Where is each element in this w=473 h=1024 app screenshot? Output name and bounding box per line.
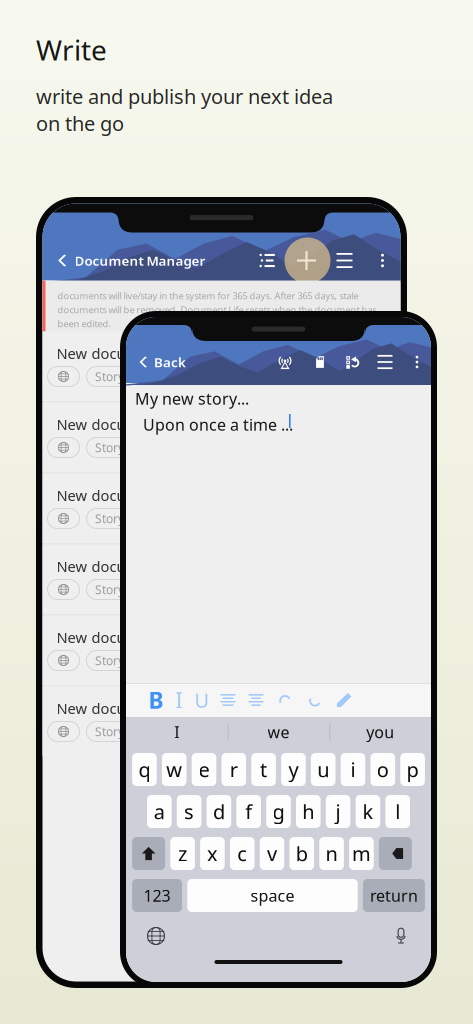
button[interactable]: Switch keyboard [142, 922, 170, 950]
button[interactable]: Story [86, 721, 132, 741]
staticText: New document [56, 556, 161, 576]
button[interactable]: More [371, 247, 393, 273]
button[interactable]: New document [42, 544, 400, 614]
button[interactable]: p [400, 753, 425, 786]
staticText: j [336, 798, 341, 825]
button[interactable]: u [311, 753, 335, 786]
button[interactable]: x [200, 837, 225, 870]
staticText: m [352, 840, 371, 867]
button[interactable]: d [207, 795, 231, 828]
button[interactable] [47, 366, 79, 386]
button[interactable]: Restore [342, 350, 364, 374]
button[interactable] [47, 579, 79, 599]
button[interactable]: Story [86, 437, 132, 457]
staticText: space [250, 885, 294, 906]
button[interactable]: Back [138, 350, 186, 374]
button[interactable]: b [289, 837, 314, 870]
button[interactable]: return [363, 879, 425, 912]
button[interactable]: Clear formatting [330, 683, 358, 717]
staticText: x [207, 840, 218, 867]
staticText: s [184, 798, 194, 825]
button[interactable]: y [281, 753, 306, 786]
staticText: 123 [144, 885, 171, 906]
button[interactable]: space [187, 879, 358, 912]
button[interactable]: Sort [254, 247, 280, 273]
button[interactable] [47, 508, 79, 528]
button[interactable]: New document [42, 686, 400, 756]
button[interactable]: z [170, 837, 195, 870]
button[interactable]: Undo [270, 683, 300, 717]
staticText: New document [56, 414, 161, 434]
staticText: d [213, 798, 225, 825]
button[interactable]: we [228, 717, 329, 747]
button[interactable]: j [326, 795, 350, 828]
button[interactable]: q [132, 753, 157, 786]
button[interactable]: Story [86, 650, 132, 670]
button[interactable]: v [260, 837, 284, 870]
staticText: Story [95, 723, 124, 739]
staticText: return [370, 885, 418, 906]
button[interactable]: New document [42, 402, 400, 472]
staticText: Story [95, 652, 124, 668]
button[interactable]: Align left [214, 683, 242, 717]
button[interactable]: h [296, 795, 321, 828]
button[interactable]: k [356, 795, 380, 828]
staticText: q [138, 756, 150, 783]
button[interactable]: 123 [132, 879, 182, 912]
staticText: e [198, 756, 209, 783]
staticText: you [366, 721, 394, 743]
staticText: p [407, 756, 419, 783]
button[interactable]: i [341, 753, 365, 786]
button[interactable]: o [370, 753, 395, 786]
button[interactable]: l [385, 795, 410, 828]
button[interactable]: New document [42, 473, 400, 543]
staticText: Story [95, 439, 124, 455]
button[interactable]: a [147, 795, 172, 828]
button[interactable]: Menu [373, 350, 397, 374]
button[interactable] [47, 650, 79, 670]
button[interactable]: Menu [331, 247, 357, 273]
button[interactable]: Publish [273, 350, 297, 374]
button[interactable]: Story [86, 366, 132, 386]
button[interactable]: t [251, 753, 276, 786]
button[interactable]: New document [42, 331, 400, 401]
button[interactable]: Save [309, 350, 331, 374]
button[interactable]: g [266, 795, 291, 828]
staticText: n [326, 840, 338, 867]
staticText: I [175, 686, 182, 714]
staticText: a [154, 798, 165, 825]
button[interactable]: e [192, 753, 216, 786]
button[interactable] [47, 437, 79, 457]
button[interactable]: r [221, 753, 246, 786]
button[interactable]: Story [86, 508, 132, 528]
button[interactable]: Shift [132, 837, 165, 870]
staticText: y [288, 756, 298, 783]
staticText: g [272, 798, 284, 825]
staticText: u [317, 756, 329, 783]
button[interactable]: Document Manager [56, 247, 205, 273]
button[interactable]: m [349, 837, 374, 870]
button[interactable]: B [144, 683, 168, 717]
button[interactable]: n [319, 837, 344, 870]
button[interactable]: U [190, 683, 214, 717]
button[interactable]: you [329, 717, 431, 747]
button[interactable]: New document [293, 247, 319, 273]
button[interactable]: Story [86, 579, 132, 599]
button[interactable]: Dictate [387, 922, 415, 950]
button[interactable]: Delete [379, 837, 412, 870]
button[interactable]: More [407, 350, 427, 374]
staticText: B [148, 685, 163, 715]
button[interactable]: Align center [242, 683, 270, 717]
staticText: write and publish your next idea [36, 83, 333, 110]
staticText: o [377, 756, 389, 783]
button[interactable]: c [230, 837, 254, 870]
button[interactable] [47, 721, 79, 741]
button[interactable]: s [177, 795, 201, 828]
staticText: l [395, 798, 400, 825]
button[interactable]: New document [42, 615, 400, 685]
button[interactable]: I [168, 683, 190, 717]
button[interactable]: f [236, 795, 261, 828]
button[interactable]: w [162, 753, 186, 786]
button[interactable]: I [126, 717, 228, 747]
button[interactable]: Redo [300, 683, 330, 717]
